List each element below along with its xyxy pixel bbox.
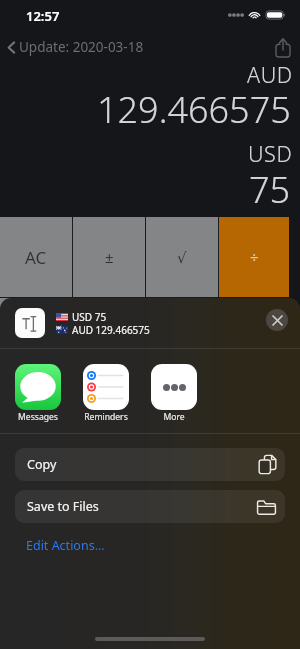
staticText: ± [105, 247, 114, 267]
button[interactable]: Reminders [83, 364, 129, 423]
button[interactable]: ± [73, 217, 145, 297]
staticText: 6 [178, 409, 187, 429]
button[interactable]: 9 [146, 298, 218, 378]
staticText: Save to Files [27, 498, 99, 515]
button[interactable]: AC [0, 217, 72, 297]
staticText: 7 [32, 328, 41, 348]
button[interactable]: ÷ [219, 217, 289, 297]
button[interactable]: 7 [0, 298, 72, 378]
button[interactable]: 8 [73, 298, 145, 378]
staticText: √ [177, 249, 187, 266]
staticText: Update: 2020-03-18 [19, 38, 144, 56]
button[interactable]: Close [266, 309, 288, 331]
button[interactable]: + [219, 460, 289, 540]
button[interactable]: 3 [146, 460, 218, 540]
staticText: USD [248, 139, 293, 168]
staticText: 75 [249, 165, 291, 214]
staticText: 1 [32, 490, 41, 510]
staticText: Reminders [83, 411, 129, 423]
button[interactable]: Save to Files [15, 490, 285, 523]
button[interactable]: More [151, 364, 197, 423]
button[interactable]: √ [146, 217, 218, 297]
staticText: ÷ [250, 247, 259, 267]
button[interactable]: 5 [73, 379, 145, 459]
staticText: More [151, 411, 197, 423]
staticText: 12:57 [26, 7, 60, 25]
button[interactable]: 2 [73, 460, 145, 540]
button[interactable]: 6 [146, 379, 218, 459]
staticText: 8 [105, 328, 114, 348]
staticText: Edit Actions... [26, 537, 105, 554]
button[interactable]: × [219, 298, 289, 378]
button[interactable]: Share [276, 38, 300, 57]
staticText: 4 [32, 409, 41, 429]
button[interactable]: − [219, 379, 289, 459]
staticText: AUD [247, 60, 293, 89]
staticText: 5 [105, 409, 114, 429]
staticText: Messages [15, 411, 61, 423]
staticText: 129.466575 [97, 85, 291, 134]
staticText: + [250, 490, 259, 510]
button[interactable]: Edit Actions... [0, 536, 113, 556]
staticText: USD 75 [72, 310, 107, 324]
button[interactable]: 1 [0, 460, 72, 540]
button[interactable]: Update: 2020-03-18 [0, 38, 152, 56]
staticText: AUD 129.466575 [72, 323, 150, 337]
staticText: Copy [27, 456, 57, 473]
staticText: AC [25, 246, 47, 269]
button[interactable]: Messages [15, 364, 61, 423]
button[interactable]: Copy [15, 448, 285, 481]
button[interactable]: 4 [0, 379, 72, 459]
